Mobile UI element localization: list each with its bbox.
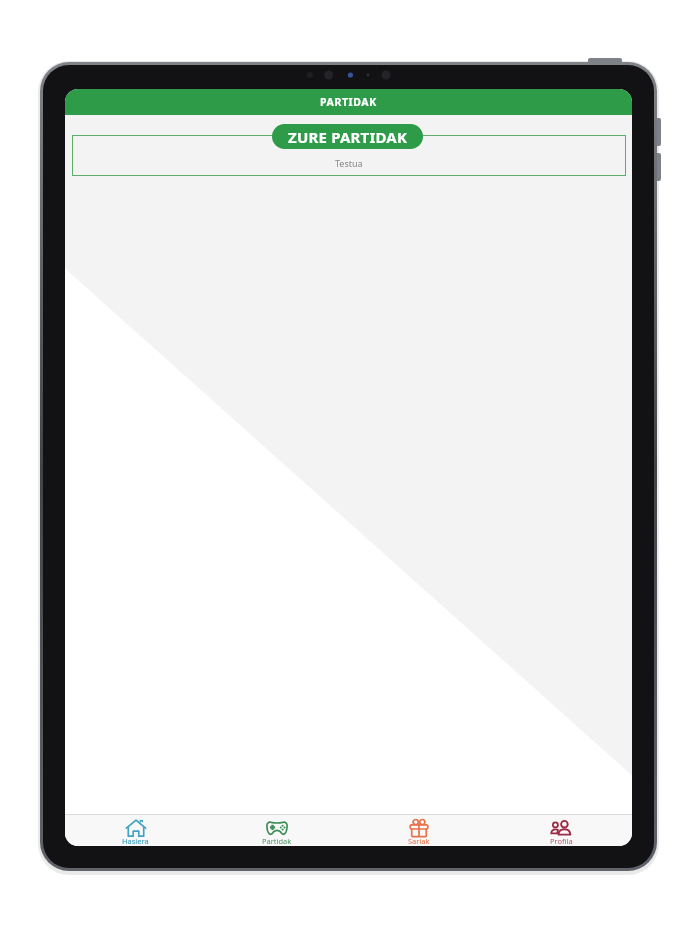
button[interactable]: Hasiera	[65, 815, 206, 846]
staticText: Testua	[335, 157, 363, 169]
button[interactable]: Profila	[490, 815, 632, 846]
button[interactable]: Testua	[72, 135, 626, 176]
staticText: Partidak	[262, 836, 292, 846]
staticText: Sariak	[408, 836, 430, 846]
staticText: ZURE PARTIDAK	[288, 127, 408, 147]
button[interactable]: ZURE PARTIDAK	[272, 124, 423, 149]
button[interactable]: Partidak	[206, 815, 348, 846]
staticText: PARTIDAK	[320, 95, 377, 109]
staticText: Profila	[550, 836, 573, 846]
staticText: Hasiera	[122, 836, 149, 846]
button[interactable]: Sariak	[348, 815, 490, 846]
